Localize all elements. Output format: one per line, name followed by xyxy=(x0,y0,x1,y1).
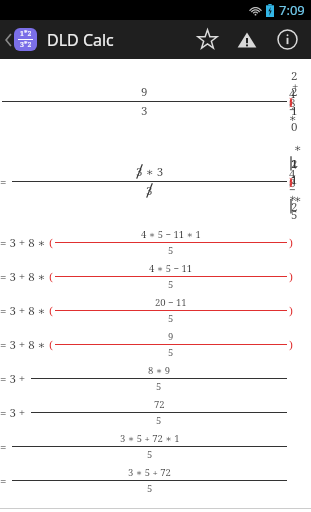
staticText: 5 xyxy=(156,414,162,427)
staticText: ( xyxy=(49,337,53,353)
staticText: 3 xyxy=(141,103,148,119)
staticText: = 3 + 8 ∗ xyxy=(0,269,49,285)
staticText: 5 xyxy=(147,448,153,461)
button[interactable]: Favourite xyxy=(187,20,227,59)
staticText: 7:09 xyxy=(279,1,305,19)
staticText: ( xyxy=(49,303,53,319)
staticText: 5 xyxy=(147,482,153,495)
staticText: 72 xyxy=(154,398,165,411)
staticText: DLD Calc xyxy=(47,29,114,51)
staticText: 9 xyxy=(141,84,148,100)
staticText: 3 ∗ 5 + 72 ∗ 1 xyxy=(120,432,180,445)
staticText: = 3 + 8 ∗ xyxy=(0,235,49,251)
staticText: = 3 + xyxy=(0,371,29,387)
staticText: 3*2 xyxy=(20,40,32,50)
staticText: 3 xyxy=(136,164,143,180)
staticText: 4 ∗ 5 − 11 ∗ 1 xyxy=(141,228,201,241)
staticText: 4 ∗ 5 − 11 xyxy=(149,262,193,275)
staticText: ( xyxy=(49,269,53,285)
staticText: = 3 + 8 ∗ xyxy=(0,337,49,353)
staticText: = xyxy=(0,174,10,190)
button[interactable]: Navigate up xyxy=(2,28,40,51)
staticText: 1*2 xyxy=(20,29,32,39)
button[interactable]: Warnings xyxy=(227,20,267,59)
staticText: 5 xyxy=(168,244,174,257)
staticText: 3 ∗ 5 + 72 xyxy=(128,466,171,479)
staticText: = 3 + xyxy=(0,405,29,421)
staticText: 5 xyxy=(156,380,162,393)
staticText: = xyxy=(0,473,10,489)
staticText: 8 ∗ 9 xyxy=(148,364,171,377)
staticText: ∗ 3 xyxy=(143,164,164,180)
staticText: = xyxy=(0,439,10,455)
staticText: ( xyxy=(49,235,53,251)
staticText: 20 − 11 xyxy=(155,296,187,309)
staticText: 3 xyxy=(146,183,153,199)
staticText: 5 xyxy=(168,278,174,291)
staticText: 5 xyxy=(168,346,174,359)
staticText: 5 xyxy=(168,312,174,325)
button[interactable]: Info xyxy=(267,20,307,59)
staticText: 9 xyxy=(168,330,174,343)
staticText: = 3 + 8 ∗ xyxy=(0,303,49,319)
